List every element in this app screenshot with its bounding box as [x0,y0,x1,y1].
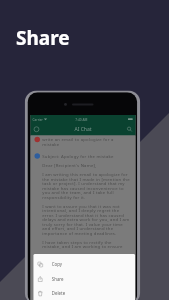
button[interactable]: Delete [33,286,135,300]
staticText: Share [16,25,70,51]
staticText: write an email to apologize for a mistak… [42,137,114,147]
staticText: Share [52,276,64,282]
staticText: 7:40 AM [75,117,88,121]
staticText: AI Chat [74,126,92,133]
staticText: Carrier [32,117,43,121]
staticText: Copy [52,261,62,267]
button[interactable]: Share [33,272,135,286]
button[interactable]: New chat [31,124,41,134]
button[interactable]: Search [124,124,134,134]
button[interactable]: Copy [33,257,135,272]
staticText: Delete [52,290,65,296]
staticText: Subject: Apology for the mistake Dear [R… [42,153,130,249]
